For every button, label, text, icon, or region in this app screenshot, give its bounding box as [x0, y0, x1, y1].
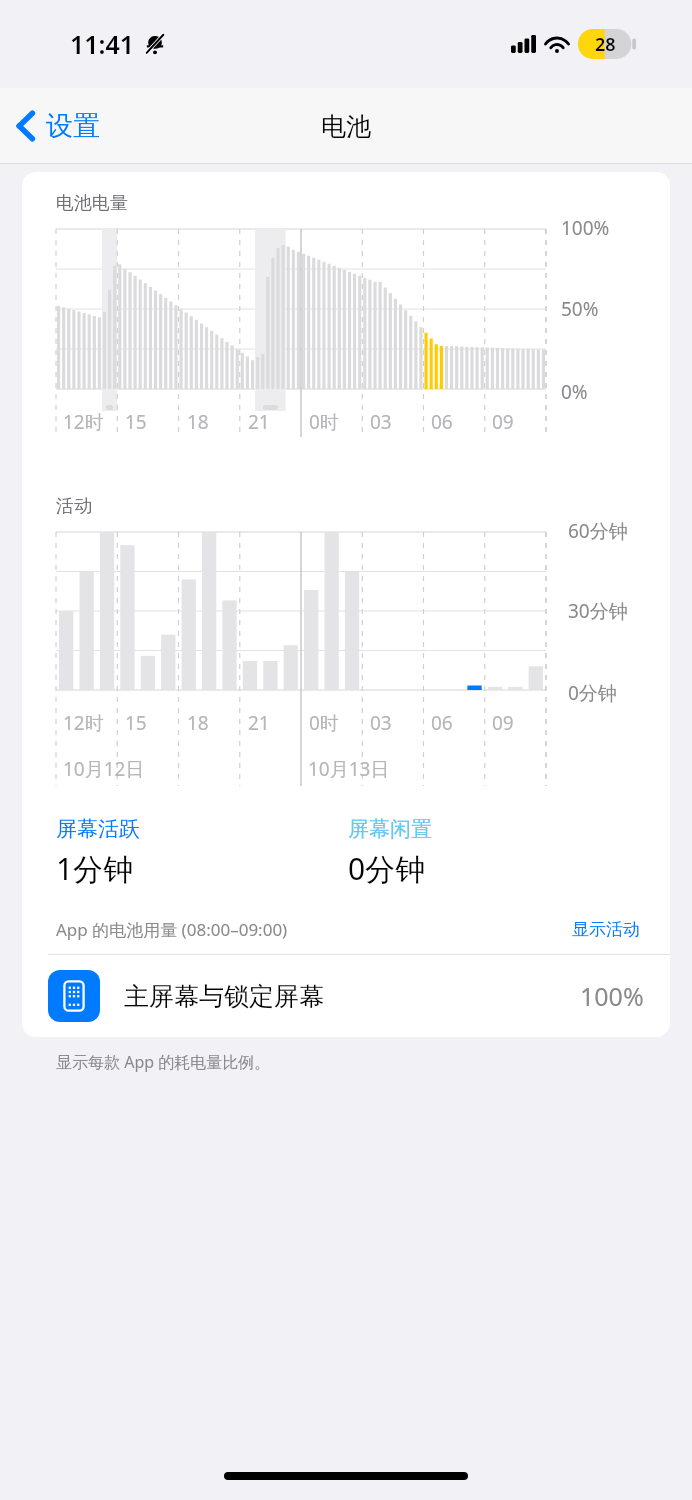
staticText: 60分钟	[568, 518, 628, 544]
staticText: 电池	[321, 111, 371, 142]
staticText: 100%	[561, 215, 610, 241]
staticText: 11:41	[70, 27, 135, 61]
staticText: 活动	[56, 495, 92, 518]
staticText: 12时	[63, 710, 104, 736]
staticText: 电池电量	[56, 192, 128, 215]
button[interactable]: 设置	[0, 103, 116, 149]
staticText: 100%	[580, 979, 644, 1013]
staticText: 06	[431, 409, 453, 435]
staticText: 50%	[561, 296, 599, 322]
staticText: 设置	[46, 109, 100, 143]
staticText: 28	[595, 32, 616, 57]
staticText: 0时	[309, 710, 339, 736]
staticText: 15	[125, 710, 147, 736]
staticText: 0%	[561, 379, 588, 405]
staticText: 显示活动	[572, 919, 640, 940]
staticText: 屏幕活跃	[56, 816, 140, 842]
staticText: 10月12日	[63, 756, 145, 782]
button[interactable]: 主屏幕与锁定屏幕	[22, 955, 670, 1037]
staticText: 12时	[63, 409, 104, 435]
staticText: 30分钟	[568, 598, 628, 624]
staticText: 03	[370, 409, 392, 435]
staticText: 1分钟	[56, 848, 134, 889]
staticText: 21	[248, 710, 270, 736]
staticText: 0分钟	[568, 680, 617, 706]
staticText: 09	[492, 710, 514, 736]
staticText: App 的电池用量 (08:00–09:00)	[56, 918, 288, 941]
staticText: 09	[492, 409, 514, 435]
staticText: 21	[248, 409, 270, 435]
staticText: 18	[187, 409, 209, 435]
staticText: 06	[431, 710, 453, 736]
staticText: 0分钟	[348, 848, 426, 889]
staticText: 15	[125, 409, 147, 435]
staticText: 主屏幕与锁定屏幕	[124, 981, 324, 1012]
staticText: 显示每款 App 的耗电量比例。	[56, 1051, 271, 1073]
staticText: 18	[187, 710, 209, 736]
button[interactable]: 显示活动	[568, 915, 644, 944]
staticText: 03	[370, 710, 392, 736]
staticText: 0时	[309, 409, 339, 435]
staticText: 屏幕闲置	[348, 816, 432, 842]
staticText: 10月13日	[308, 756, 390, 782]
